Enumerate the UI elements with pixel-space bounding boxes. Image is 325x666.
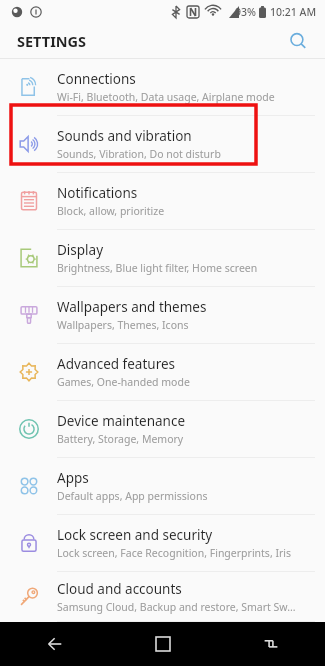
staticText: Brightness, Blue light filter, Home scre… <box>57 261 258 275</box>
button[interactable]: Device maintenance <box>0 401 325 458</box>
button[interactable]: Connections <box>0 59 325 116</box>
staticText: Connections <box>57 70 136 88</box>
staticText: Lock screen and security <box>57 526 213 544</box>
staticText: Wi-Fi, Bluetooth, Data usage, Airplane m… <box>57 90 275 104</box>
staticText: Apps <box>57 469 89 487</box>
staticText: Sounds and vibration <box>57 127 192 145</box>
staticText: Lock screen, Face Recognition, Fingerpri… <box>57 546 292 560</box>
staticText: SETTINGS <box>17 31 87 51</box>
button[interactable]: Back <box>0 622 109 666</box>
staticText: Wallpapers, Themes, Icons <box>57 318 189 332</box>
staticText: Games, One-handed mode <box>57 375 190 389</box>
button[interactable]: Sounds and vibration <box>0 116 325 173</box>
staticText: 10:21 AM <box>270 5 317 19</box>
staticText: Block, allow, prioritize <box>57 204 165 218</box>
button[interactable]: Cloud and accounts <box>0 572 325 622</box>
staticText: Notifications <box>57 184 138 202</box>
staticText: Battery, Storage, Memory <box>57 432 184 446</box>
button[interactable]: Home <box>109 622 217 666</box>
staticText: Cloud and accounts <box>57 580 182 598</box>
staticText: Wallpapers and themes <box>57 298 207 316</box>
staticText: Samsung Cloud, Backup and restore, Smart… <box>57 600 296 614</box>
staticText: Default apps, App permissions <box>57 489 208 503</box>
button[interactable]: Wallpapers and themes <box>0 287 325 344</box>
button[interactable]: Apps <box>0 458 325 515</box>
button[interactable]: Notifications <box>0 173 325 230</box>
button[interactable]: Recents <box>217 622 325 666</box>
button[interactable]: Lock screen and security <box>0 515 325 572</box>
button[interactable]: Display <box>0 230 325 287</box>
staticText: Sounds, Vibration, Do not disturb <box>57 147 221 161</box>
button[interactable]: Advanced features <box>0 344 325 401</box>
staticText: 93% <box>235 5 256 19</box>
staticText: Device maintenance <box>57 412 186 430</box>
staticText: Advanced features <box>57 355 176 373</box>
staticText: Display <box>57 241 104 259</box>
button[interactable]: Search <box>285 28 311 54</box>
